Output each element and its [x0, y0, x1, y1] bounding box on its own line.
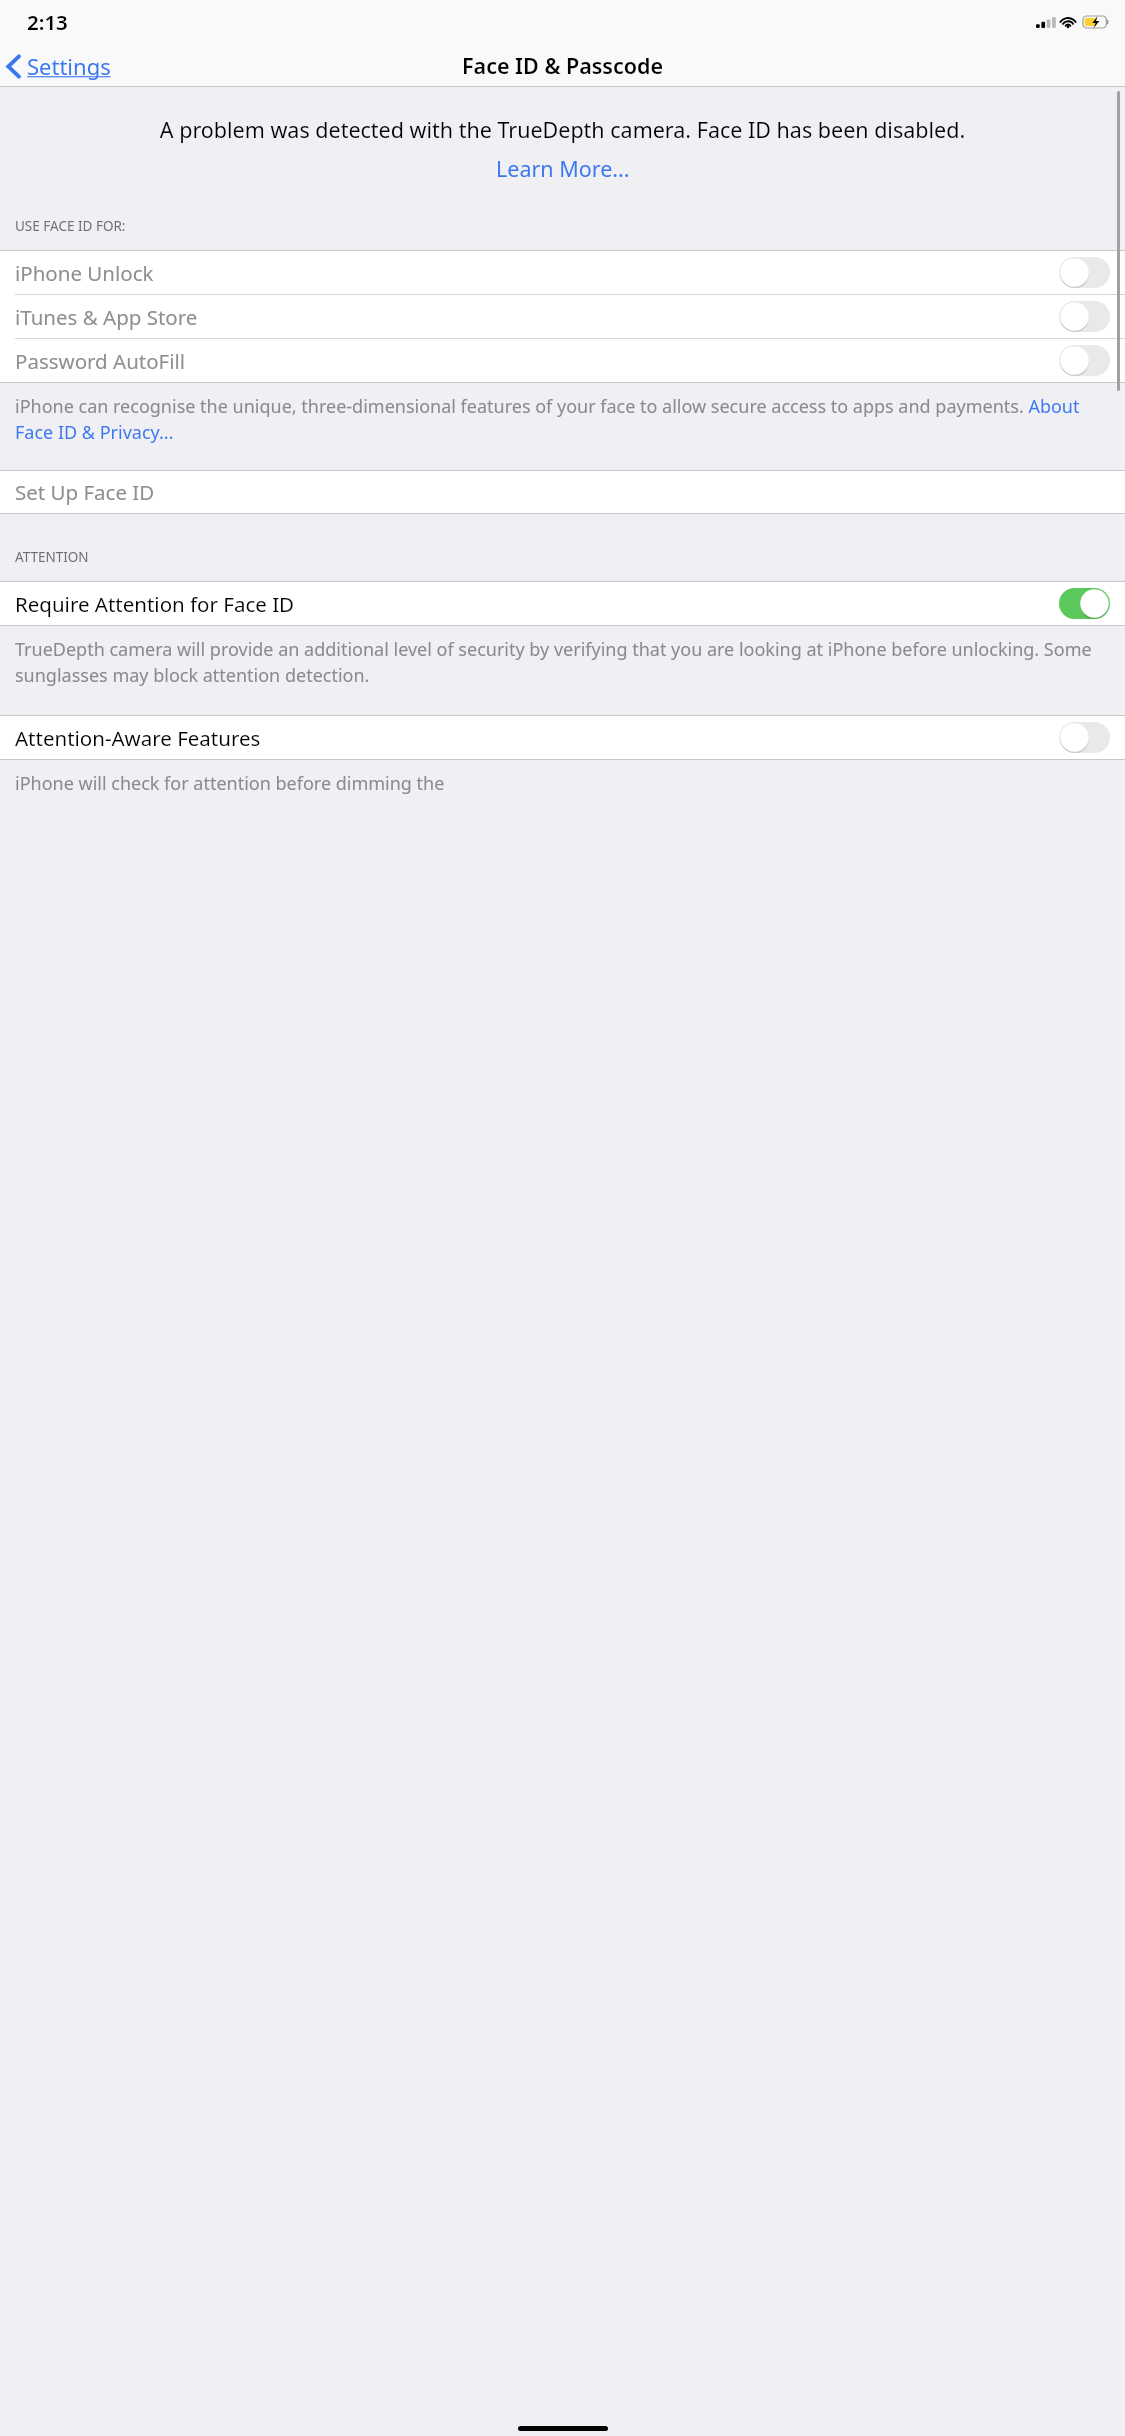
button[interactable]: Toggle off — [1059, 722, 1110, 753]
staticText: ATTENTION — [15, 548, 89, 566]
staticText: TrueDepth camera will provide an additio… — [15, 637, 1110, 687]
button[interactable]: iTunes & App Store — [0, 295, 1125, 338]
button[interactable]: Settings — [0, 47, 121, 85]
button[interactable]: Toggle off — [1059, 345, 1110, 376]
button[interactable]: Set Up Face ID — [0, 471, 1125, 513]
button[interactable]: Learn More... — [488, 152, 638, 185]
button[interactable]: Toggle on — [1059, 588, 1110, 619]
staticText: Settings — [27, 51, 111, 81]
button[interactable]: iPhone Unlock — [0, 251, 1125, 294]
staticText: USE FACE ID FOR: — [15, 217, 126, 235]
staticText: Attention-Aware Features — [15, 724, 1059, 752]
button[interactable]: Password AutoFill — [0, 339, 1125, 382]
button[interactable]: Require Attention for Face ID — [0, 582, 1125, 625]
staticText: 2:13 — [27, 8, 68, 36]
button[interactable]: Toggle off — [1059, 301, 1110, 332]
staticText: iPhone Unlock — [15, 259, 1059, 287]
staticText: Require Attention for Face ID — [15, 590, 1059, 618]
staticText: iTunes & App Store — [15, 303, 1059, 331]
staticText: Face ID & Passcode — [462, 51, 664, 80]
staticText: Password AutoFill — [15, 347, 1059, 375]
staticText: A problem was detected with the TrueDept… — [14, 115, 1111, 144]
staticText: iPhone will check for attention before d… — [15, 771, 445, 796]
staticText: Set Up Face ID — [15, 478, 155, 506]
button[interactable]: Toggle off — [1059, 257, 1110, 288]
staticText: iPhone can recognise the unique, three-d… — [15, 394, 1110, 444]
button[interactable]: Attention-Aware Features — [0, 716, 1125, 759]
